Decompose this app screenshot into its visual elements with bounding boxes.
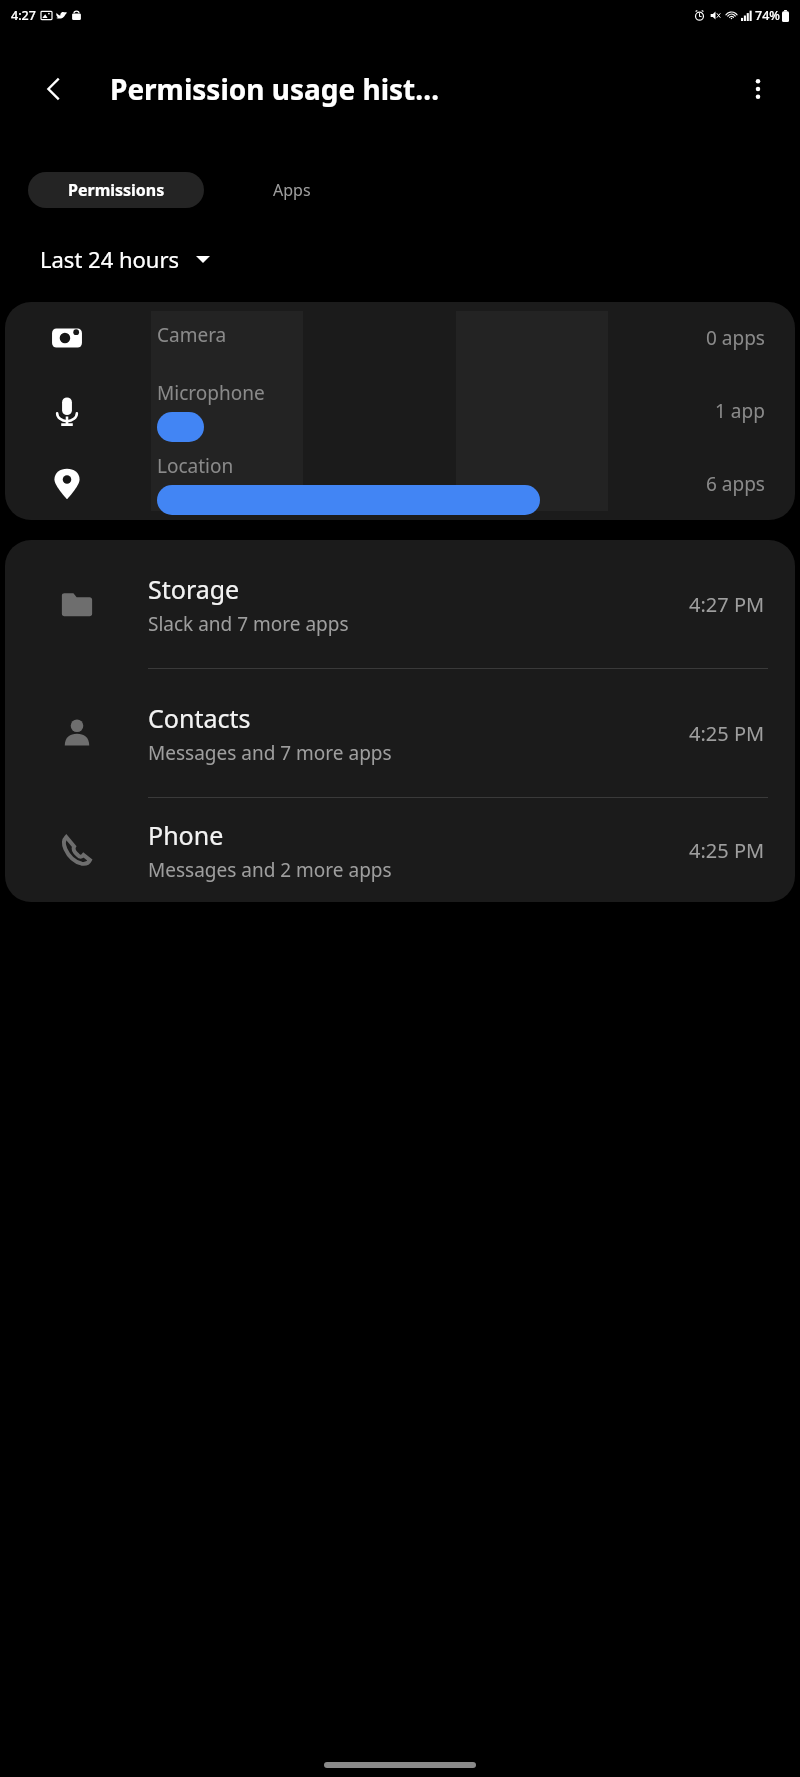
staticText: 4:25 PM <box>689 720 765 747</box>
staticText: 4:27 PM <box>689 591 765 618</box>
staticText: Storage <box>148 572 240 606</box>
button[interactable]: More options <box>734 65 782 113</box>
staticText: Messages and 7 more apps <box>148 740 392 766</box>
staticText: Permissions <box>68 179 165 201</box>
staticText: 4:27 <box>11 7 36 24</box>
button[interactable]: Storage <box>5 540 795 668</box>
staticText: Contacts <box>148 701 251 735</box>
staticText: 74% <box>755 7 780 24</box>
staticText: 6 apps <box>706 471 765 497</box>
staticText: Microphone <box>157 380 265 406</box>
staticText: Camera <box>157 322 227 348</box>
button[interactable]: Phone <box>5 798 795 902</box>
staticText: Apps <box>273 179 311 201</box>
button[interactable]: Permissions <box>28 172 204 208</box>
staticText: Phone <box>148 818 224 852</box>
staticText: 4:25 PM <box>689 837 765 864</box>
staticText: 0 apps <box>706 325 765 351</box>
staticText: Last 24 hours <box>40 244 180 274</box>
staticText: Location <box>157 453 234 479</box>
button[interactable]: Contacts <box>5 669 795 797</box>
button[interactable]: Back <box>30 65 78 113</box>
staticText: Slack and 7 more apps <box>148 611 349 637</box>
button[interactable]: Camera <box>5 302 795 520</box>
button[interactable]: Apps <box>204 172 380 208</box>
button[interactable]: Last 24 hours <box>30 234 220 284</box>
staticText: Messages and 2 more apps <box>148 857 392 883</box>
staticText: 1 app <box>715 398 765 424</box>
staticText: Permission usage hist… <box>110 70 440 108</box>
